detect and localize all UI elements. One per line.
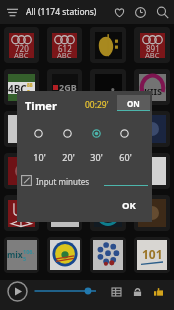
button[interactable]: [47, 237, 82, 273]
staticText: Input minutes: [36, 176, 90, 187]
button[interactable]: [90, 27, 126, 63]
staticText: 882: [27, 82, 35, 94]
staticText: mix: [7, 249, 23, 261]
button[interactable]: [47, 195, 82, 231]
button[interactable]: KIIS: [134, 69, 170, 105]
button[interactable]: Like: [148, 282, 168, 302]
staticText: 00:29': [85, 99, 109, 111]
button[interactable]: [134, 153, 170, 189]
staticText: ON: [127, 98, 140, 109]
staticText: 2GB: [59, 81, 77, 93]
button[interactable]: [47, 111, 82, 147]
button[interactable]: Volume: [32, 282, 100, 300]
staticText: ABC: [145, 50, 160, 60]
staticText: 30': [90, 151, 103, 163]
button[interactable]: ON: [117, 95, 150, 111]
button[interactable]: Option: [63, 129, 72, 138]
button[interactable]: mix: [4, 237, 39, 273]
staticText: 10': [33, 151, 46, 163]
button[interactable]: [134, 111, 170, 147]
staticText: ABC: [14, 50, 29, 60]
staticText: KIIS: [144, 85, 162, 97]
button[interactable]: Lock: [127, 282, 147, 302]
button[interactable]: [90, 237, 126, 273]
button[interactable]: Play: [6, 280, 29, 303]
button[interactable]: 720: [4, 27, 39, 63]
staticText: OK: [122, 199, 136, 212]
staticText: 720: [15, 43, 29, 54]
staticText: 106.5: [23, 248, 37, 262]
button[interactable]: OK: [117, 197, 141, 213]
button[interactable]: [47, 153, 82, 189]
button[interactable]: [4, 111, 39, 147]
button[interactable]: [4, 153, 39, 189]
staticText: 101: [142, 246, 163, 262]
button[interactable]: 612: [47, 27, 82, 63]
button[interactable]: Selected option: [92, 129, 101, 138]
button[interactable]: Search: [151, 1, 174, 24]
button[interactable]: [90, 69, 126, 105]
button[interactable]: Menu: [0, 0, 24, 24]
staticText: All (1174 stations): [26, 6, 97, 18]
staticText: 20': [62, 151, 75, 163]
button[interactable]: [90, 153, 126, 189]
button[interactable]: Option: [120, 129, 129, 138]
button[interactable]: 101: [134, 237, 170, 273]
button[interactable]: 4BC: [4, 69, 39, 105]
staticText: ABC: [57, 50, 72, 60]
button[interactable]: [90, 195, 126, 231]
button[interactable]: 2GB: [47, 69, 82, 105]
staticText: 4BC: [8, 82, 27, 94]
button[interactable]: 891: [134, 27, 170, 63]
staticText: 612: [58, 43, 72, 54]
button[interactable]: Grid view: [106, 282, 126, 302]
staticText: Timer: [25, 98, 57, 113]
button[interactable]: [4, 195, 39, 231]
staticText: 60': [119, 151, 132, 163]
button[interactable]: [134, 195, 170, 231]
staticText: 891: [146, 43, 160, 54]
button[interactable]: Option: [34, 129, 43, 138]
button[interactable]: Sleep timer: [130, 2, 151, 23]
button[interactable]: [90, 111, 126, 147]
button[interactable]: Favourites: [109, 2, 130, 23]
